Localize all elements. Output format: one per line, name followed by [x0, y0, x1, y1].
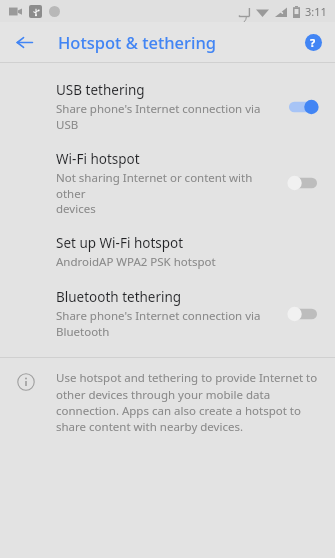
- button[interactable]: Back: [6, 24, 42, 60]
- staticText: Use hotspot and tethering to provide Int…: [56, 370, 319, 434]
- staticText: ?: [310, 35, 316, 50]
- staticText: Share phone's Internet connection via US…: [56, 101, 261, 132]
- staticText: Share phone's Internet connection via Bl…: [56, 308, 261, 339]
- staticText: Hotspot & tethering: [58, 31, 217, 53]
- staticText: Wi-Fi hotspot: [56, 150, 140, 168]
- button[interactable]: Wi-Fi hotspot: [0, 141, 335, 225]
- button[interactable]: Help: [298, 27, 328, 57]
- button[interactable]: Bluetooth tethering: [0, 279, 335, 348]
- staticText: USB tethering: [56, 81, 145, 99]
- button[interactable]: Toggle off: [285, 302, 321, 326]
- button[interactable]: Toggle on: [285, 95, 321, 119]
- staticText: AndroidAP WPA2 PSK hotspot: [56, 254, 216, 270]
- staticText: Set up Wi-Fi hotspot: [56, 234, 184, 252]
- staticText: Not sharing Internet or content with oth…: [56, 170, 279, 216]
- button[interactable]: USB tethering: [0, 72, 335, 141]
- button[interactable]: Set up Wi-Fi hotspot: [0, 225, 335, 279]
- staticText: 3:11: [305, 4, 327, 19]
- button[interactable]: Toggle off: [285, 171, 321, 195]
- staticText: Bluetooth tethering: [56, 288, 182, 306]
